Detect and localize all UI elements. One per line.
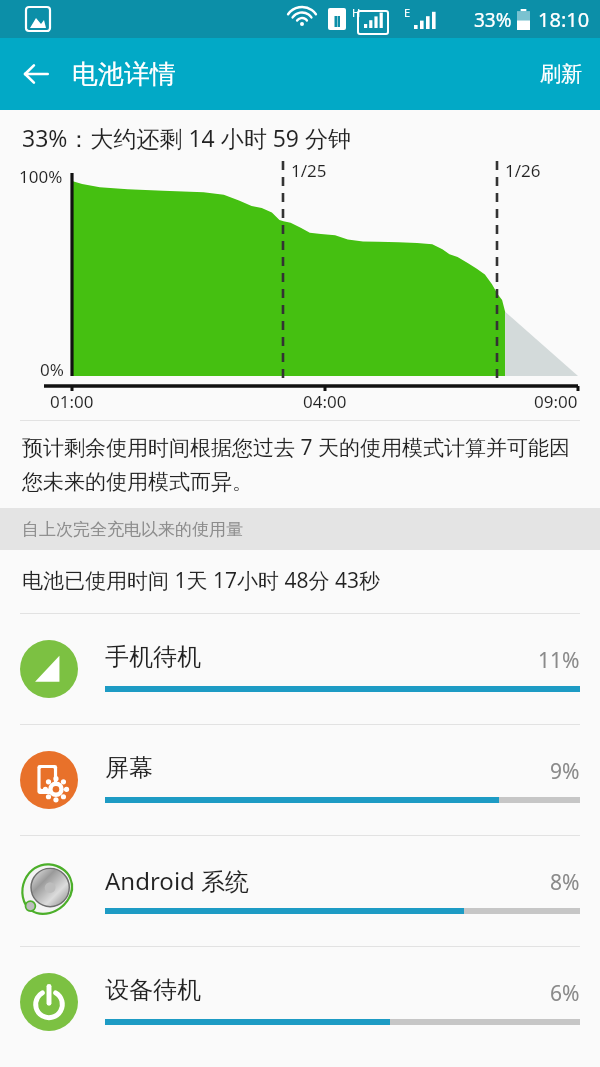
- staticText: 01:00: [50, 390, 94, 413]
- staticText: 18:10: [538, 6, 590, 33]
- staticText: 33%：大约还剩 14 小时 59 分钟: [22, 122, 351, 153]
- staticText: 手机待机: [105, 642, 201, 672]
- staticText: 自上次完全充电以来的使用量: [22, 519, 243, 540]
- button[interactable]: 刷新: [522, 45, 600, 103]
- staticText: 1/26: [505, 159, 541, 182]
- staticText: 9%: [550, 757, 580, 786]
- staticText: 刷新: [540, 61, 582, 87]
- staticText: 33%: [474, 7, 512, 33]
- staticText: 屏幕: [105, 753, 153, 783]
- staticText: 09:00: [534, 390, 578, 413]
- button[interactable]: Back: [8, 46, 64, 102]
- button[interactable]: 屏幕: [0, 725, 600, 835]
- staticText: 0%: [40, 358, 64, 381]
- staticText: E: [404, 5, 411, 20]
- staticText: 设备待机: [105, 975, 201, 1005]
- button[interactable]: Android 系统: [0, 836, 600, 946]
- staticText: 电池已使用时间 1天 17小时 48分 43秒: [22, 566, 380, 595]
- staticText: H: [352, 5, 361, 20]
- staticText: 6%: [550, 979, 580, 1008]
- button[interactable]: 设备待机: [0, 947, 600, 1057]
- staticText: 1/25: [291, 159, 327, 182]
- staticText: 11%: [538, 646, 580, 675]
- staticText: 04:00: [303, 390, 347, 413]
- staticText: 8%: [550, 868, 580, 897]
- button[interactable]: 手机待机: [0, 614, 600, 724]
- staticText: 100%: [19, 165, 63, 188]
- staticText: 预计剩余使用时间根据您过去 7 天的使用模式计算并可能因您未来的使用模式而异。: [22, 433, 582, 496]
- staticText: Android 系统: [105, 864, 250, 897]
- staticText: 电池详情: [72, 58, 176, 91]
